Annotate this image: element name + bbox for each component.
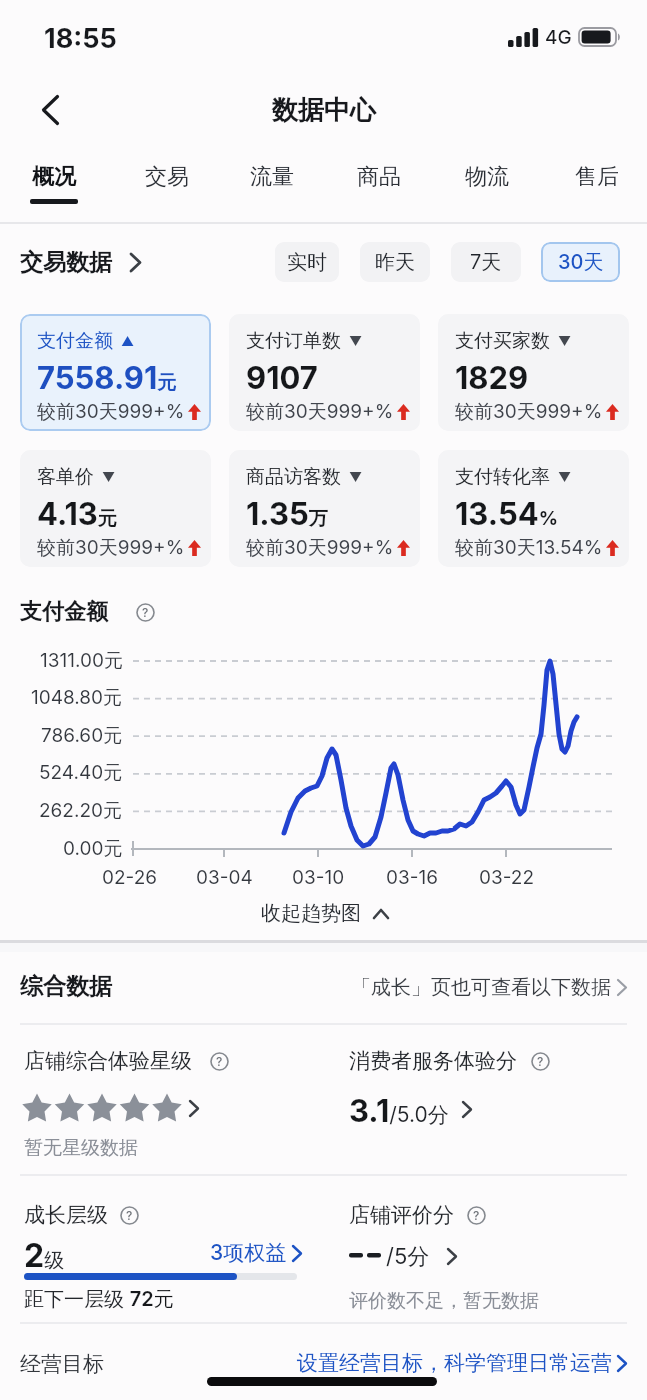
staticText: ? — [126, 1208, 133, 1223]
staticText: 消费者服务体验分 — [349, 1048, 517, 1074]
staticText: 售后 — [575, 163, 619, 191]
staticText: 1048.80元 — [31, 686, 123, 710]
button[interactable]: 30天 — [541, 242, 620, 282]
staticText: 经营目标 — [20, 1351, 104, 1377]
staticText: 7天 — [470, 250, 502, 275]
staticText: ▼ — [102, 469, 116, 485]
button[interactable]: 物流 — [461, 152, 513, 202]
staticText: 支付订单数 — [246, 329, 341, 353]
staticText: 9107 — [246, 359, 318, 395]
staticText: 03-04 — [196, 866, 253, 889]
button[interactable]: 商品访客数 — [229, 450, 420, 567]
staticText: 30天 — [558, 250, 604, 275]
button[interactable]: 交易数据 — [20, 246, 160, 278]
staticText: 18:55 — [44, 22, 117, 54]
button[interactable]: 实时 — [275, 242, 339, 282]
button[interactable]: 交易 — [141, 152, 193, 202]
button[interactable] — [30, 90, 70, 130]
staticText: 0.00元 — [63, 837, 123, 861]
staticText: 4.13元 — [37, 495, 117, 531]
button[interactable]: 3.1/5.0分 — [349, 1092, 479, 1126]
staticText: 较前30天999+% — [37, 400, 185, 424]
staticText: 3项权益 — [210, 1240, 287, 1267]
staticText: 距下一层级 72元 — [24, 1287, 174, 1312]
button[interactable]: 支付转化率 — [438, 450, 629, 567]
staticText: 03-10 — [292, 866, 345, 889]
staticText: 实时 — [287, 250, 327, 275]
staticText: 262.20元 — [39, 799, 123, 823]
button[interactable]: 概况 — [28, 152, 80, 202]
staticText: ▼ — [558, 333, 572, 349]
staticText: 支付买家数 — [455, 329, 550, 353]
staticText: 成长层级 — [24, 1202, 108, 1228]
staticText: 评价数不足，暂无数据 — [349, 1289, 539, 1313]
staticText: 较前30天999+% — [246, 536, 394, 560]
button[interactable] — [349, 1240, 459, 1272]
staticText: 支付转化率 — [455, 465, 550, 489]
staticText: 3.1/5.0分 — [349, 1092, 449, 1126]
staticText: 2级 — [24, 1236, 65, 1270]
button[interactable]: 昨天 — [360, 242, 430, 282]
staticText: 店铺综合体验星级 — [24, 1048, 192, 1074]
staticText: 暂无星级数据 — [24, 1136, 138, 1160]
button[interactable]: 客单价 — [20, 450, 211, 567]
staticText: 1829 — [455, 359, 529, 395]
staticText: 数据中心 — [272, 94, 376, 127]
button[interactable] — [24, 1093, 204, 1125]
button[interactable]: 支付买家数 — [438, 314, 629, 431]
staticText: 1311.00元 — [40, 649, 123, 673]
staticText: ▼ — [349, 333, 363, 349]
staticText: 支付金额 — [37, 329, 113, 353]
staticText: 03-22 — [479, 866, 534, 889]
staticText: 收起趋势图 — [261, 901, 361, 926]
staticText: 商品 — [357, 163, 401, 191]
staticText: 较前30天999+% — [455, 400, 603, 424]
staticText: ▼ — [558, 469, 572, 485]
staticText: 设置经营目标，科学管理日常运营 — [297, 1350, 612, 1376]
staticText: 交易数据 — [20, 248, 112, 277]
staticText: 13.54% — [455, 495, 558, 531]
staticText: 支付金额 — [20, 598, 108, 626]
button[interactable]: 「成长」页也可查看以下数据 — [300, 973, 627, 1001]
button[interactable]: 流量 — [246, 152, 298, 202]
staticText: 综合数据 — [20, 972, 112, 1001]
staticText: 店铺评价分 — [349, 1202, 454, 1228]
staticText: 较前30天999+% — [246, 400, 394, 424]
staticText: 客单价 — [37, 465, 94, 489]
staticText: ? — [142, 605, 149, 620]
staticText: 交易 — [145, 163, 189, 191]
button[interactable]: 收起趋势图 — [240, 898, 410, 928]
button[interactable]: 设置经营目标，科学管理日常运营 — [260, 1348, 627, 1378]
staticText: 流量 — [250, 163, 294, 191]
staticText: ? — [216, 1054, 223, 1069]
staticText: 物流 — [465, 163, 509, 191]
button[interactable]: 3项权益 — [192, 1238, 302, 1268]
button[interactable]: 商品 — [353, 152, 405, 202]
staticText: 7558.91元 — [37, 359, 177, 395]
button[interactable]: 售后 — [571, 152, 623, 202]
staticText: /5分 — [386, 1243, 430, 1271]
staticText: ▲ — [121, 333, 135, 349]
staticText: 786.60元 — [41, 724, 123, 748]
staticText: 较前30天13.54% — [455, 536, 603, 560]
staticText: 1.35万 — [246, 495, 328, 531]
staticText: 02-26 — [102, 866, 158, 889]
staticText: ▼ — [349, 469, 363, 485]
button[interactable]: 支付金额 — [20, 314, 211, 431]
staticText: 524.40元 — [39, 761, 123, 785]
staticText: ? — [537, 1054, 544, 1069]
button[interactable]: 7天 — [451, 242, 521, 282]
staticText: 03-16 — [386, 866, 438, 889]
staticText: 「成长」页也可查看以下数据 — [351, 975, 611, 1000]
staticText: 概况 — [32, 163, 76, 191]
staticText: 商品访客数 — [246, 465, 341, 489]
staticText: 较前30天999+% — [37, 536, 185, 560]
staticText: 昨天 — [375, 250, 415, 275]
staticText: ? — [473, 1208, 480, 1223]
staticText: 4G — [545, 26, 572, 49]
button[interactable]: 支付订单数 — [229, 314, 420, 431]
